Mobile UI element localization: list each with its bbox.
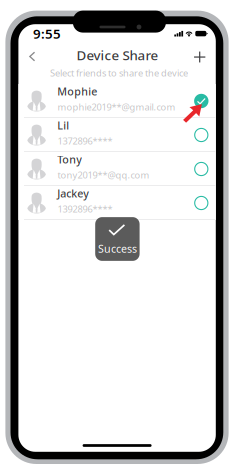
button[interactable]: Back [19,44,45,68]
staticText: Jackey [57,186,89,200]
staticText: Select friends to share the device [50,67,188,79]
button[interactable]: Add device [188,45,212,69]
staticText: mophie2019**@gmail.com [57,101,175,113]
staticText: 9:55 [33,25,61,42]
button[interactable]: Jackey [18,186,216,220]
staticText: Tony [57,152,82,166]
staticText: 1372896**** [57,135,112,147]
staticText: Device Share [77,46,159,64]
staticText: 1392896**** [57,203,112,215]
button[interactable]: Lil [18,118,216,152]
button[interactable]: Tony [18,152,216,186]
staticText: tony2019**@qq.com [57,169,149,181]
button[interactable]: Mophie [18,84,216,118]
staticText: Mophie [57,84,97,98]
staticText: Success [98,241,137,256]
staticText: Lil [57,118,69,132]
